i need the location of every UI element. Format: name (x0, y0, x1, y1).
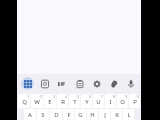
button[interactable]: Voice input (124, 77, 137, 90)
button[interactable]: A (24, 109, 36, 120)
staticText: 5 (77, 95, 79, 99)
button[interactable]: 1 (18, 94, 30, 108)
staticText: 2 (40, 95, 42, 99)
button[interactable]: G (75, 109, 86, 120)
button[interactable]: 6 (81, 94, 92, 108)
staticText: T (73, 98, 77, 106)
staticText: 3 (53, 95, 55, 99)
button[interactable]: 8 (105, 94, 116, 108)
button[interactable]: L (123, 109, 134, 120)
button[interactable]: GIF (55, 77, 68, 90)
button[interactable]: 9 (117, 94, 128, 108)
button[interactable]: 0 (129, 94, 140, 108)
button[interactable]: Emoji (21, 77, 34, 90)
staticText: U (96, 98, 101, 106)
staticText: 4 (65, 95, 67, 99)
button[interactable]: F (63, 109, 74, 120)
staticText: Y (85, 98, 89, 106)
staticText: E (48, 98, 52, 106)
staticText: I (109, 98, 112, 106)
button[interactable]: Settings (90, 77, 103, 90)
button[interactable]: Themes (107, 77, 120, 90)
staticText: 9 (125, 95, 127, 99)
button[interactable]: Stickers (38, 77, 51, 90)
button[interactable]: 5 (69, 94, 80, 108)
staticText: 8 (113, 95, 115, 99)
staticText: G (78, 111, 83, 119)
staticText: W (34, 98, 40, 106)
staticText: L (127, 111, 131, 119)
staticText: A (28, 111, 32, 119)
button[interactable]: H (87, 109, 98, 120)
button[interactable]: 4 (57, 94, 68, 108)
button[interactable]: D (50, 109, 62, 120)
staticText: D (54, 111, 59, 119)
staticText: K (115, 111, 119, 119)
staticText: Q (22, 98, 27, 106)
staticText: H (90, 111, 95, 119)
button[interactable]: 7 (93, 94, 104, 108)
staticText: F (67, 111, 71, 119)
staticText: 7 (101, 95, 103, 99)
staticText: S (41, 111, 45, 119)
staticText: P (133, 98, 137, 106)
staticText: 0 (137, 95, 139, 99)
staticText: 6 (89, 95, 91, 99)
staticText: O (120, 98, 125, 106)
staticText: 1 (27, 95, 29, 99)
button[interactable]: Clipboard (73, 77, 86, 90)
button[interactable]: K (111, 109, 122, 120)
button[interactable]: 2 (31, 94, 43, 108)
staticText: R (61, 98, 65, 106)
button[interactable]: S (37, 109, 49, 120)
button[interactable]: 3 (44, 94, 56, 108)
staticText: J (104, 111, 106, 119)
button[interactable]: J (99, 109, 110, 120)
